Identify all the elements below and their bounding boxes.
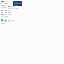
button[interactable]: Status (2, 6, 6, 8)
button[interactable]: Header panel (13, 1, 22, 6)
button[interactable]: Footer action (1, 19, 14, 21)
